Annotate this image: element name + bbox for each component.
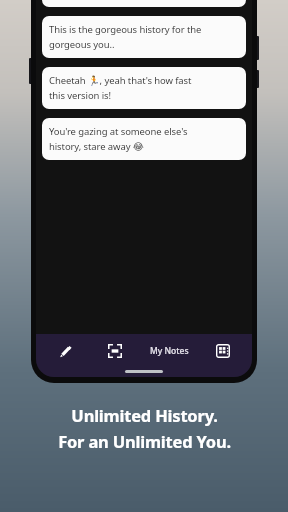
button[interactable]: Scan text (90, 334, 140, 368)
staticText: My Notes (150, 345, 189, 357)
staticText: Unlimited History. (71, 404, 218, 426)
staticText: For an Unlimited You. (58, 430, 231, 452)
button[interactable]: Compose note (40, 334, 90, 368)
staticText: gorgeous you.. (49, 38, 115, 51)
staticText: history, stare away 😂 (49, 140, 144, 153)
button[interactable]: You're gazing at someone else's (42, 118, 246, 160)
staticText: This is the gorgeous history for the (49, 23, 202, 36)
button[interactable]: Notebooks (198, 334, 248, 368)
button[interactable]: My Notes (140, 334, 198, 368)
staticText: You're gazing at someone else's (49, 125, 188, 138)
button[interactable]: We know you like this app! (42, 0, 246, 7)
staticText: this version is! (49, 89, 111, 102)
staticText: Cheetah 🏃, yeah that's how fast (49, 74, 192, 87)
button[interactable]: Cheetah 🏃, yeah that's how fast (42, 67, 246, 109)
button[interactable]: This is the gorgeous history for the (42, 16, 246, 58)
